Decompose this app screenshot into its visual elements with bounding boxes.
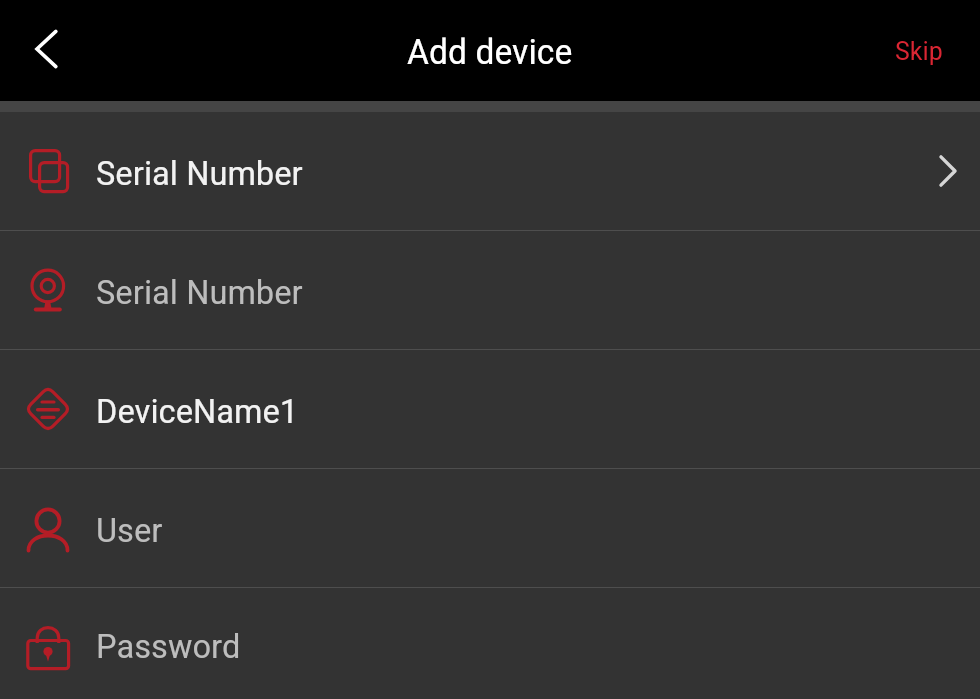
staticText: Skip — [895, 36, 943, 66]
staticText: User — [96, 510, 916, 550]
staticText: DeviceName1 — [96, 391, 916, 431]
staticText: Serial Number — [96, 153, 916, 193]
button[interactable]: Password — [0, 588, 980, 699]
button[interactable]: User — [0, 469, 980, 587]
staticText: Serial Number — [96, 272, 916, 312]
button[interactable]: Serial Number — [0, 231, 980, 349]
button[interactable]: Back — [0, 0, 92, 101]
button[interactable]: DeviceName1 — [0, 350, 980, 468]
staticText: Password — [96, 626, 916, 666]
button[interactable]: Skip — [871, 0, 980, 101]
staticText: Add device — [407, 32, 573, 73]
button[interactable]: Serial Number — [0, 112, 980, 230]
